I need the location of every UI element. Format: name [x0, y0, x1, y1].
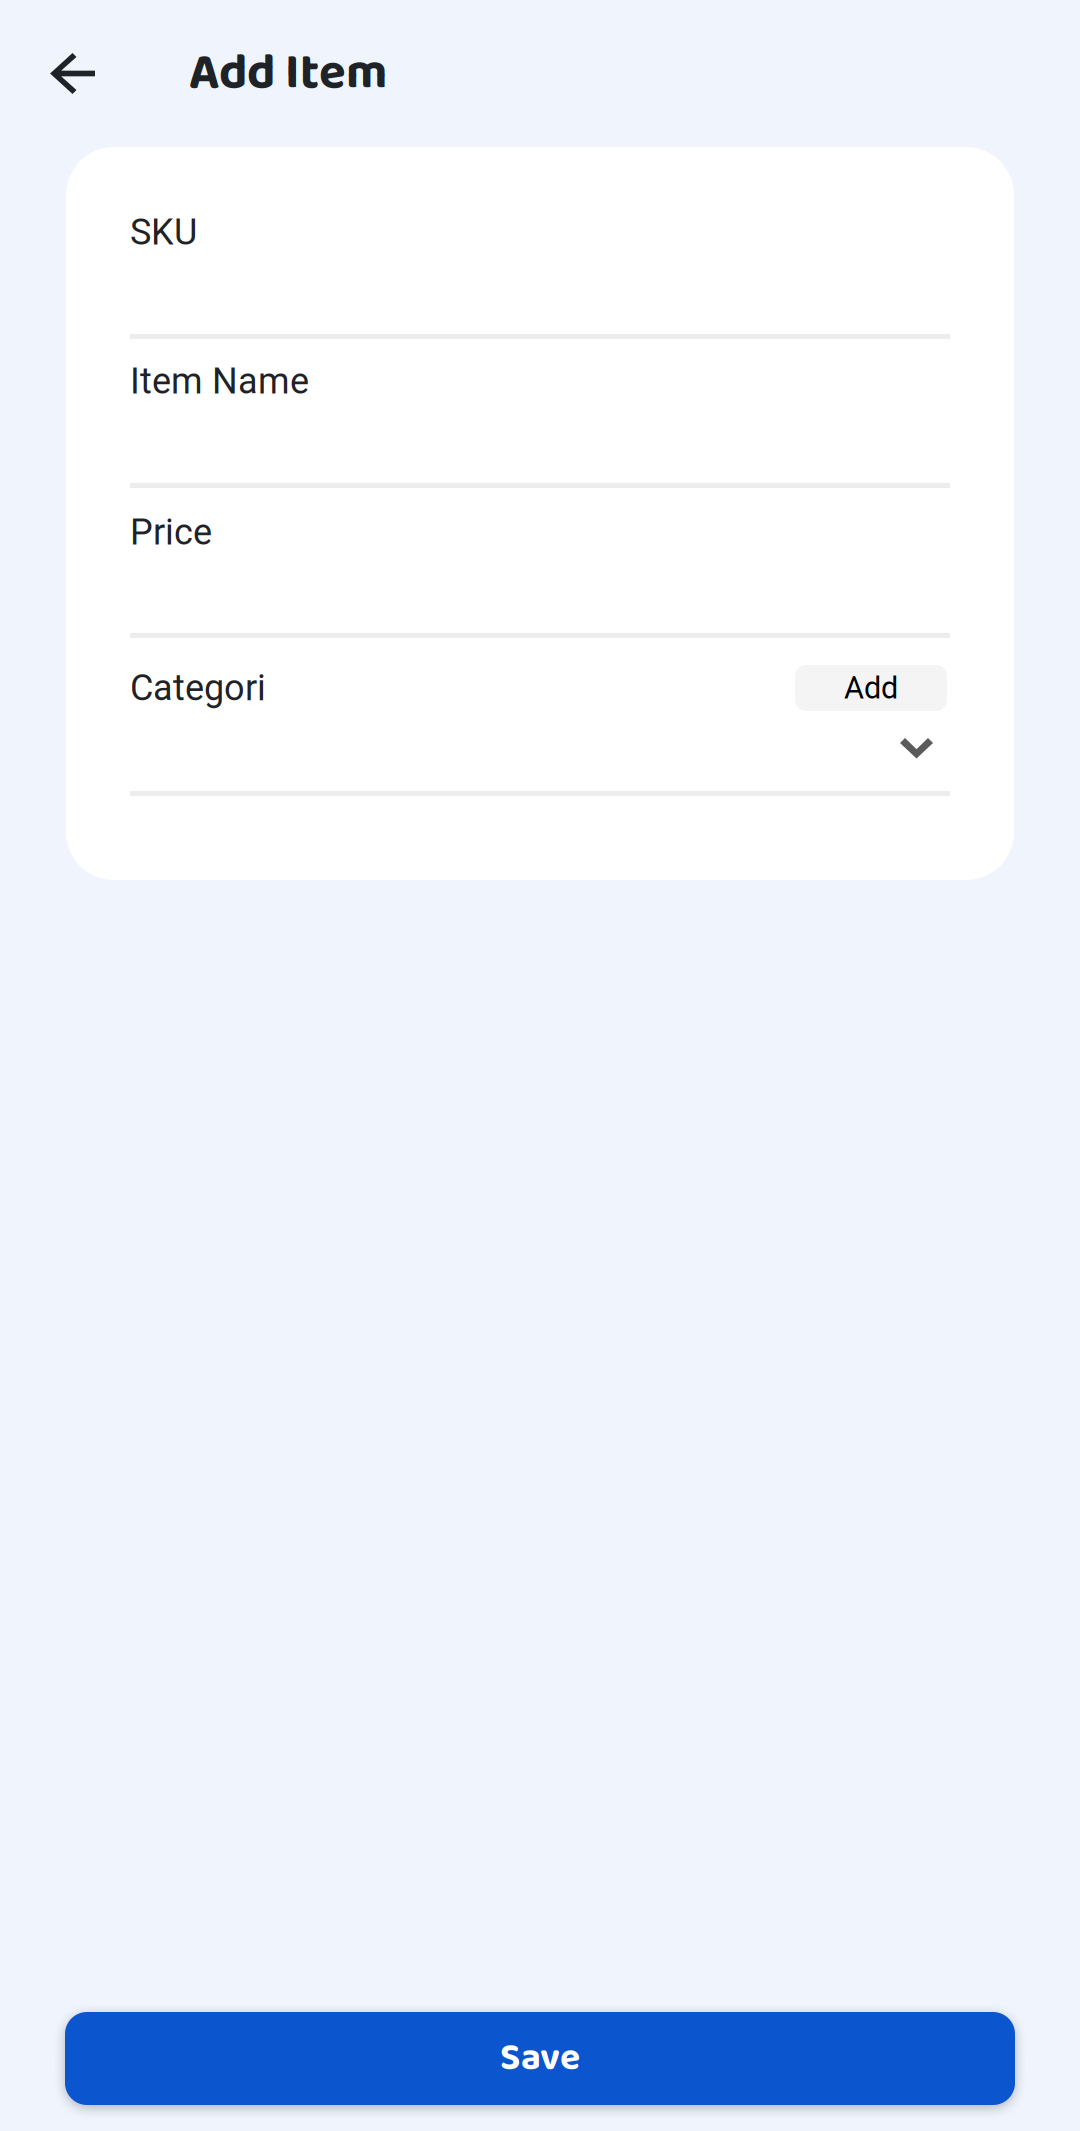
staticText: Save: [500, 2029, 580, 2088]
button[interactable]: Item Name: [130, 339, 950, 488]
button[interactable]: Expand categories: [900, 738, 933, 758]
button[interactable]: Price: [130, 488, 950, 638]
staticText: SKU: [130, 211, 197, 253]
button[interactable]: Save: [65, 2012, 1015, 2105]
button[interactable]: Back: [25, 25, 121, 121]
button[interactable]: Categori: [130, 665, 795, 711]
button[interactable]: Add: [795, 665, 947, 711]
staticText: Categori: [130, 667, 266, 709]
staticText: Item Name: [130, 360, 309, 402]
button[interactable]: SKU: [130, 147, 950, 339]
staticText: Add: [844, 670, 898, 706]
staticText: Add Item: [189, 34, 387, 113]
staticText: Price: [130, 511, 212, 553]
